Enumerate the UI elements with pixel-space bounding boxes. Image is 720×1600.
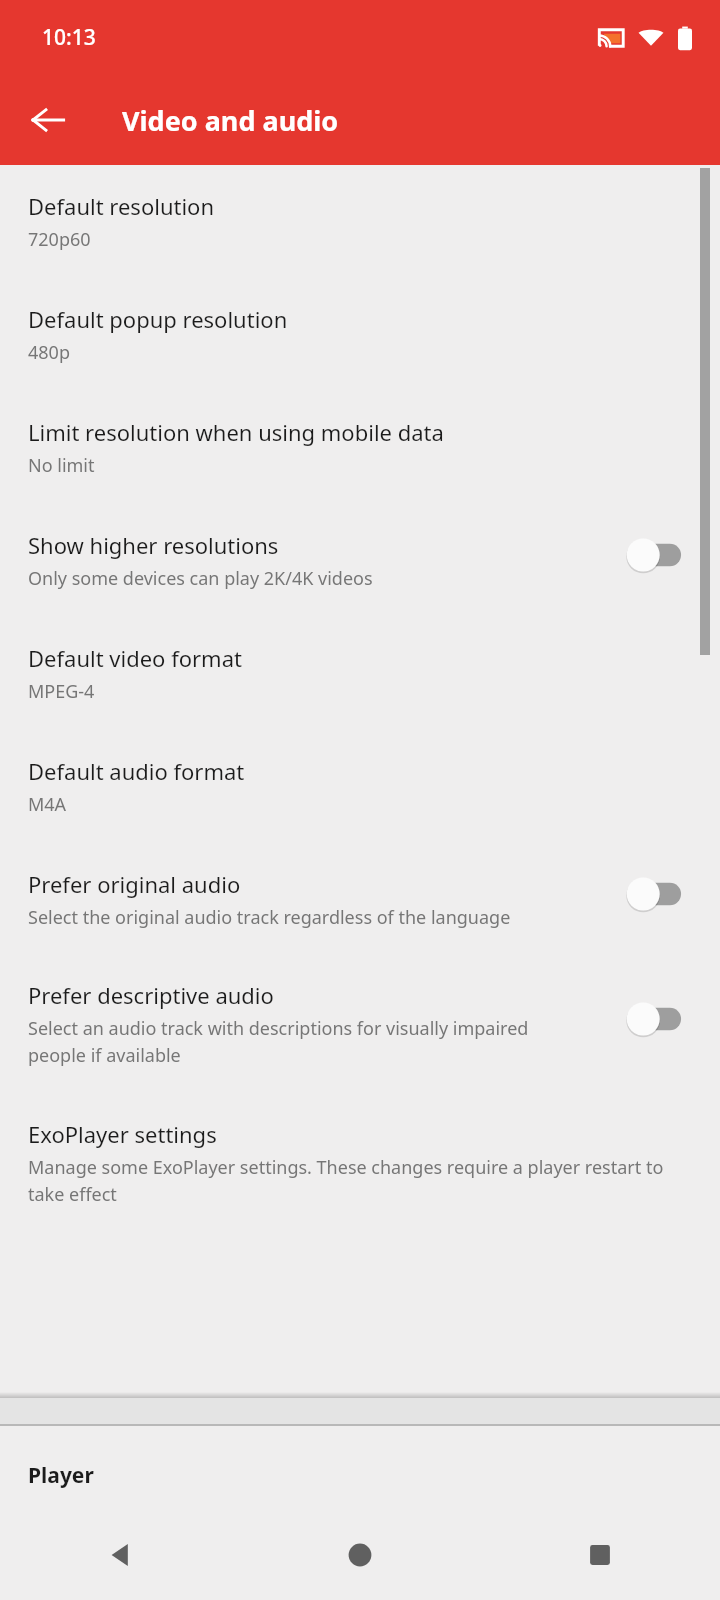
staticText: Player [28, 1461, 94, 1490]
button[interactable]: Show higher resolutions [0, 488, 720, 601]
staticText: Prefer descriptive audio [28, 980, 274, 1010]
staticText: Prefer original audio [28, 869, 241, 899]
staticText: 480p [28, 340, 668, 365]
staticText: M4A [28, 792, 668, 817]
staticText: 720p60 [28, 227, 668, 252]
button[interactable]: Prefer descriptive audio [0, 940, 720, 1077]
button[interactable]: Player [0, 1426, 720, 1510]
button[interactable]: Back [14, 86, 82, 154]
staticText: Default video format [28, 643, 242, 673]
button[interactable]: Prefer original audio [620, 870, 690, 918]
button[interactable]: ExoPlayer settings [0, 1077, 720, 1216]
staticText: Show higher resolutions [28, 530, 279, 560]
button[interactable]: Default popup resolution [0, 262, 720, 375]
staticText: MPEG-4 [28, 679, 668, 704]
button[interactable]: Prefer descriptive audio [620, 995, 690, 1043]
button[interactable]: Limit resolution when using mobile data [0, 375, 720, 488]
staticText: Select the original audio track regardle… [28, 905, 568, 930]
staticText: Video and audio [122, 102, 339, 139]
staticText: Default popup resolution [28, 304, 288, 334]
staticText: Default audio format [28, 756, 245, 786]
button[interactable]: Default video format [0, 601, 720, 714]
staticText: Limit resolution when using mobile data [28, 417, 444, 447]
button[interactable]: Home [240, 1510, 480, 1600]
button[interactable]: Default resolution [0, 165, 720, 262]
staticText: Only some devices can play 2K/4K videos [28, 566, 620, 591]
button[interactable]: Default audio format [0, 714, 720, 827]
button[interactable]: Prefer original audio [0, 827, 720, 940]
staticText: ExoPlayer settings [28, 1119, 217, 1149]
button[interactable]: Show higher resolutions [620, 531, 690, 579]
button[interactable]: Back [0, 1510, 240, 1600]
staticText: Manage some ExoPlayer settings. These ch… [28, 1155, 678, 1206]
staticText: Default resolution [28, 191, 215, 221]
staticText: 10:13 [42, 23, 96, 52]
button[interactable]: Recent apps [480, 1510, 720, 1600]
staticText: Select an audio track with descriptions … [28, 1016, 588, 1067]
staticText: No limit [28, 453, 668, 478]
